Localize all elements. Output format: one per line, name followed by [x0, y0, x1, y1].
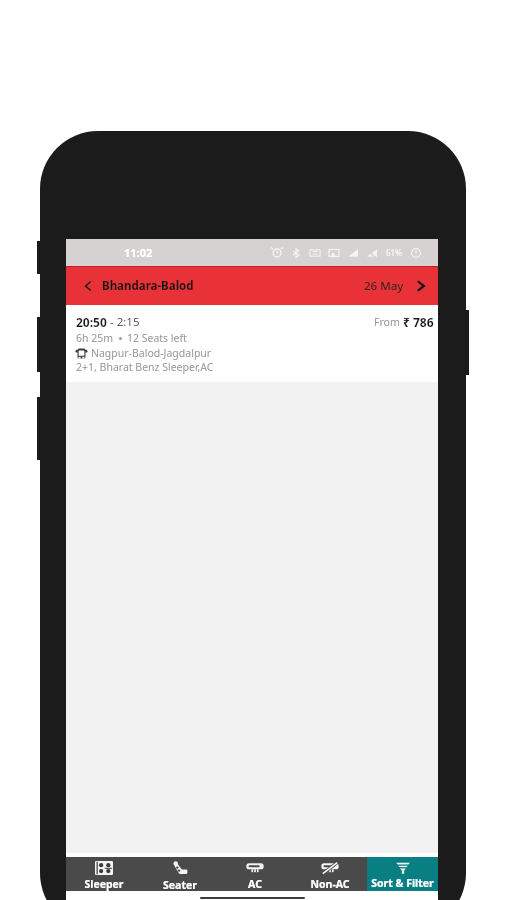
staticText: - 2:15 [107, 314, 140, 330]
button[interactable]: Sleeper [66, 857, 142, 891]
staticText: Non-AC [310, 877, 350, 891]
button[interactable]: Back [78, 276, 98, 296]
staticText: Sort & Filter [371, 876, 434, 890]
staticText: 26 May [364, 278, 404, 294]
staticText: 61% [386, 247, 402, 258]
staticText: AC [248, 877, 262, 891]
staticText: 2+1, Bharat Benz Sleeper,AC [76, 360, 214, 374]
staticText: Nagpur-Balod-Jagdalpur [91, 346, 212, 360]
button[interactable]: Non-AC [292, 857, 367, 891]
staticText: 11:02 [124, 245, 153, 260]
staticText: From [374, 315, 403, 329]
staticText: 6h 25m [76, 331, 114, 345]
staticText: 12 Seats left [127, 331, 187, 345]
staticText: ₹ 786 [403, 314, 434, 330]
button[interactable]: 20:50 [66, 305, 438, 382]
button[interactable]: Sort & Filter [367, 857, 438, 891]
staticText: Sleeper [84, 877, 124, 891]
button[interactable]: AC [217, 857, 292, 891]
button[interactable]: Seater [142, 857, 217, 891]
staticText: 20:50 [76, 314, 107, 330]
staticText: Bhandara-Balod [102, 278, 194, 294]
staticText: Seater [163, 878, 197, 891]
button[interactable]: 26 May [356, 278, 426, 294]
